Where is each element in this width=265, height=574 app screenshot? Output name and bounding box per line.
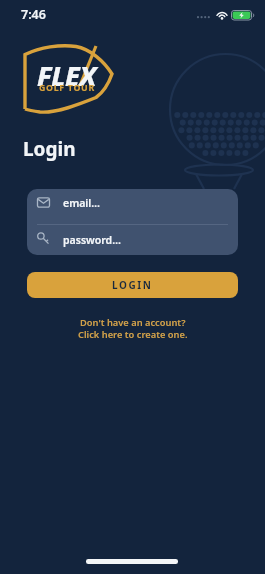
button[interactable]: email… xyxy=(27,189,238,224)
button[interactable]: password… xyxy=(27,225,238,255)
button[interactable]: LOGIN xyxy=(27,272,238,298)
staticText: Don't have an account? xyxy=(80,316,186,329)
staticText: Login xyxy=(23,136,76,162)
staticText: email… xyxy=(63,196,101,210)
staticText: GOLF TOUR xyxy=(39,82,95,94)
staticText: password… xyxy=(63,233,121,247)
staticText: LOGIN xyxy=(112,278,153,292)
staticText: 7:46 xyxy=(21,6,46,23)
staticText: FLEX xyxy=(37,57,96,94)
button[interactable]: Don't have an account? xyxy=(0,316,265,341)
staticText: Click here to create one. xyxy=(78,328,188,341)
